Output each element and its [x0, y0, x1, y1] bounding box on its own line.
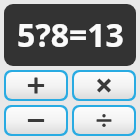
button[interactable]: Divide	[74, 107, 134, 134]
button[interactable]: Multiply	[74, 72, 134, 99]
staticText: 5?8=13	[17, 13, 124, 57]
button[interactable]: 5?8=13	[4, 4, 136, 66]
button[interactable]: Plus	[6, 72, 66, 99]
button[interactable]: Minus	[6, 107, 66, 134]
